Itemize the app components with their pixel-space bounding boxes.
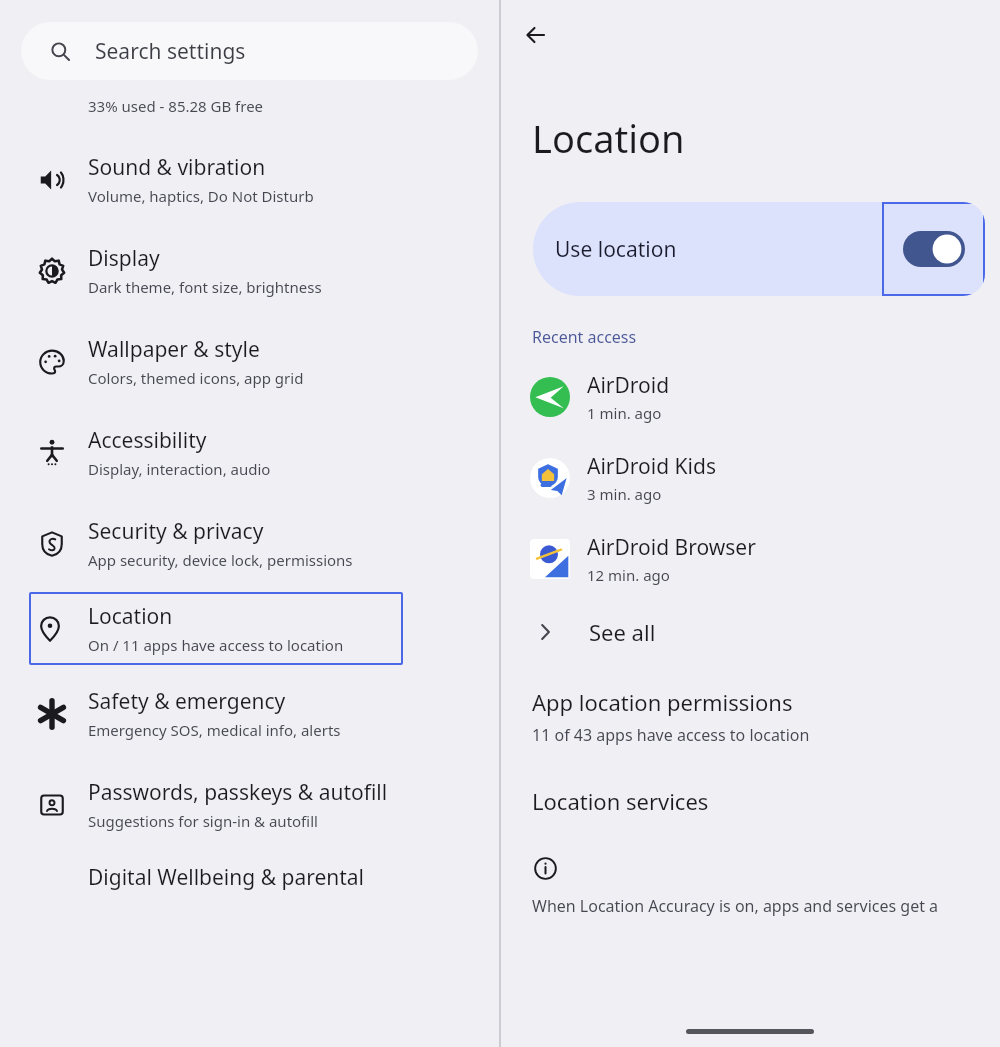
staticText: Suggestions for sign-in & autofill — [88, 811, 318, 831]
button[interactable]: AirDroid Browser — [500, 526, 1000, 592]
staticText: AirDroid Kids — [587, 452, 716, 481]
staticText: Use location — [555, 235, 677, 264]
button[interactable]: Use location — [533, 202, 985, 296]
button[interactable]: Sound & vibration — [0, 143, 500, 216]
staticText: Sound & vibration — [88, 153, 266, 182]
button[interactable]: Wallpaper & style — [0, 325, 500, 398]
button[interactable]: Location services — [500, 783, 1000, 819]
button[interactable]: Safety & emergency — [0, 677, 500, 750]
staticText: Location — [88, 602, 173, 631]
button[interactable]: Back — [512, 11, 560, 59]
staticText: Location — [532, 112, 685, 164]
staticText: Digital Wellbeing & parental — [88, 863, 365, 892]
staticText: Dark theme, font size, brightness — [88, 277, 322, 297]
staticText: App location permissions — [532, 687, 793, 717]
button[interactable]: Security & privacy — [0, 507, 500, 580]
button[interactable]: App location permissions — [500, 684, 1000, 749]
staticText: Recent access — [532, 326, 637, 348]
staticText: 11 of 43 apps have access to location — [532, 724, 810, 746]
button[interactable]: See all — [500, 610, 1000, 654]
staticText: Display — [88, 244, 160, 273]
staticText: On / 11 apps have access to location — [88, 635, 344, 655]
staticText: Volume, haptics, Do Not Disturb — [88, 186, 314, 206]
staticText: Accessibility — [88, 426, 207, 455]
staticText: Search settings — [95, 37, 246, 66]
staticText: Passwords, passkeys & autofill — [88, 778, 388, 807]
button[interactable]: Location — [29, 592, 403, 665]
staticText: AirDroid Browser — [587, 533, 756, 562]
staticText: Safety & emergency — [88, 687, 286, 716]
staticText: AirDroid — [587, 371, 670, 400]
button[interactable]: Passwords, passkeys & autofill — [0, 768, 500, 841]
staticText: Display, interaction, audio — [88, 459, 271, 479]
staticText: See all — [589, 617, 656, 647]
staticText: App security, device lock, permissions — [88, 550, 353, 570]
button[interactable]: Search settings — [21, 22, 478, 80]
staticText: Colors, themed icons, app grid — [88, 368, 304, 388]
staticText: 12 min. ago — [587, 565, 670, 585]
staticText: Location services — [532, 786, 709, 816]
staticText: 3 min. ago — [587, 484, 662, 504]
button[interactable]: Accessibility — [0, 416, 500, 489]
button[interactable]: Display — [0, 234, 500, 307]
button[interactable]: AirDroid — [500, 364, 1000, 430]
staticText: 1 min. ago — [587, 403, 662, 423]
staticText: Wallpaper & style — [88, 335, 260, 364]
button[interactable]: Use location toggle — [882, 202, 985, 296]
staticText: When Location Accuracy is on, apps and s… — [532, 895, 939, 917]
staticText: Emergency SOS, medical info, alerts — [88, 720, 341, 740]
staticText: Security & privacy — [88, 517, 264, 546]
button[interactable]: AirDroid Kids — [500, 445, 1000, 511]
staticText: 33% used - 85.28 GB free — [88, 96, 264, 116]
